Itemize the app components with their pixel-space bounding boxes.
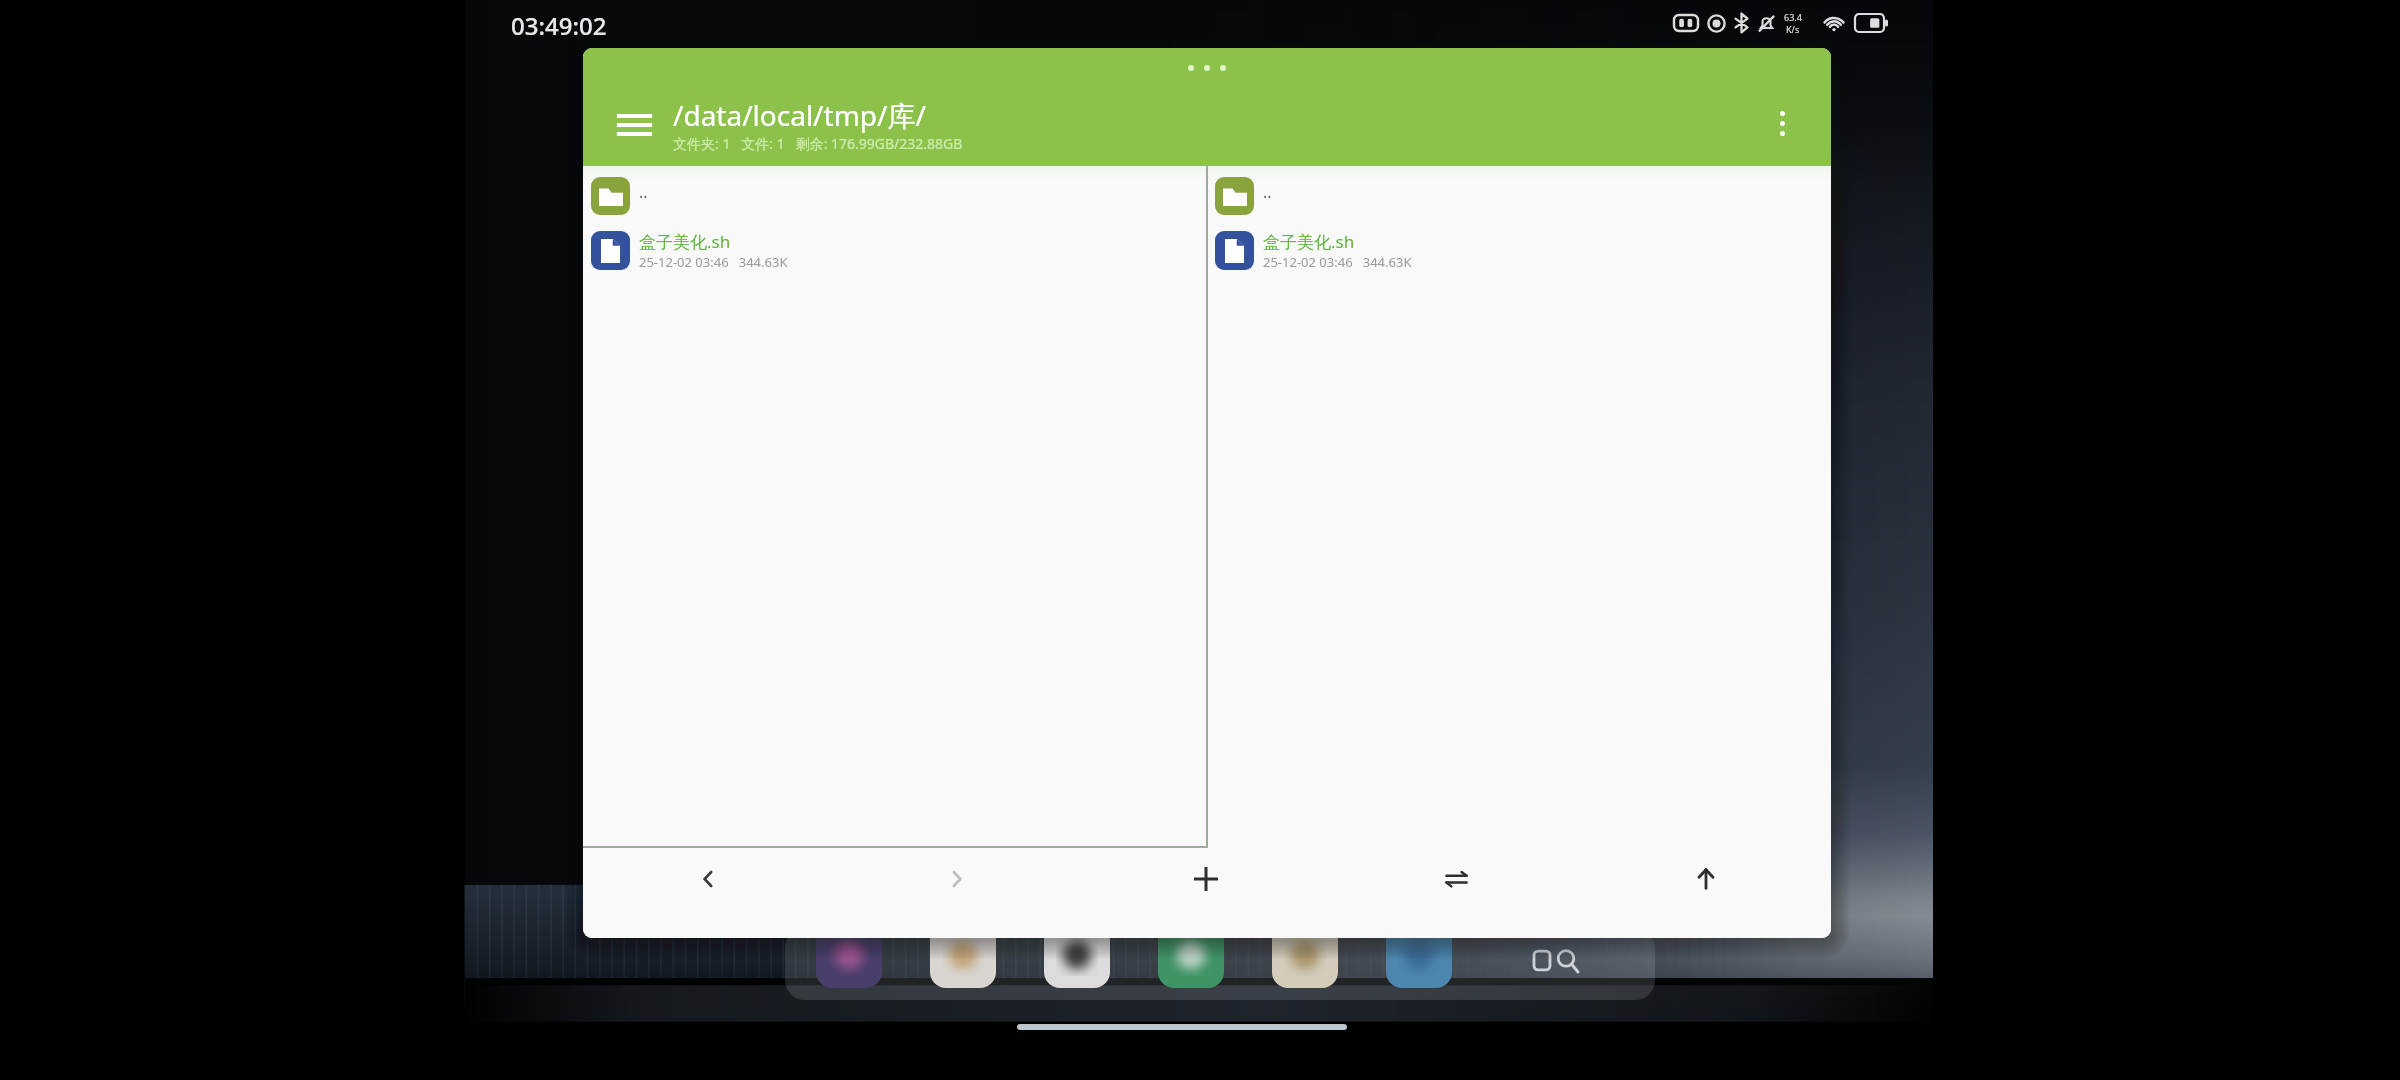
- staticText: 25-12-02 03:46 344.63K: [639, 253, 788, 270]
- button[interactable]: 盒子美化.sh: [1215, 230, 1831, 270]
- staticText: /data/local/tmp/库/: [673, 96, 926, 134]
- staticText: K/s: [1786, 23, 1800, 35]
- staticText: 文件夹: 1 文件: 1 剩余: 176.99GB/232.88GB: [673, 134, 963, 153]
- button[interactable]: App: [1158, 922, 1224, 988]
- staticText: ..: [1263, 181, 1272, 203]
- button[interactable]: App: [1386, 922, 1452, 988]
- staticText: 03:49:02: [511, 9, 607, 42]
- button[interactable]: ..: [1215, 177, 1831, 215]
- button[interactable]: App: [816, 922, 882, 988]
- staticText: 63.4: [1784, 11, 1802, 23]
- button[interactable]: More options: [1757, 98, 1807, 148]
- staticText: 盒子美化.sh: [1263, 230, 1355, 253]
- button[interactable]: ..: [591, 177, 1207, 215]
- button[interactable]: Add: [1081, 848, 1331, 910]
- button[interactable]: 盒子美化.sh: [591, 230, 1207, 270]
- button[interactable]: Menu: [609, 100, 659, 150]
- button[interactable]: Swap panes: [1331, 848, 1581, 910]
- button[interactable]: Up: [1581, 848, 1831, 910]
- staticText: ..: [639, 181, 648, 203]
- staticText: 盒子美化.sh: [639, 230, 731, 253]
- button[interactable]: Back: [583, 848, 832, 910]
- button[interactable]: Search: [1527, 930, 1589, 992]
- button[interactable]: App: [1044, 922, 1110, 988]
- staticText: 25-12-02 03:46 344.63K: [1263, 253, 1412, 270]
- button[interactable]: App: [930, 922, 996, 988]
- button[interactable]: Forward: [832, 848, 1081, 910]
- button[interactable]: App: [1272, 922, 1338, 988]
